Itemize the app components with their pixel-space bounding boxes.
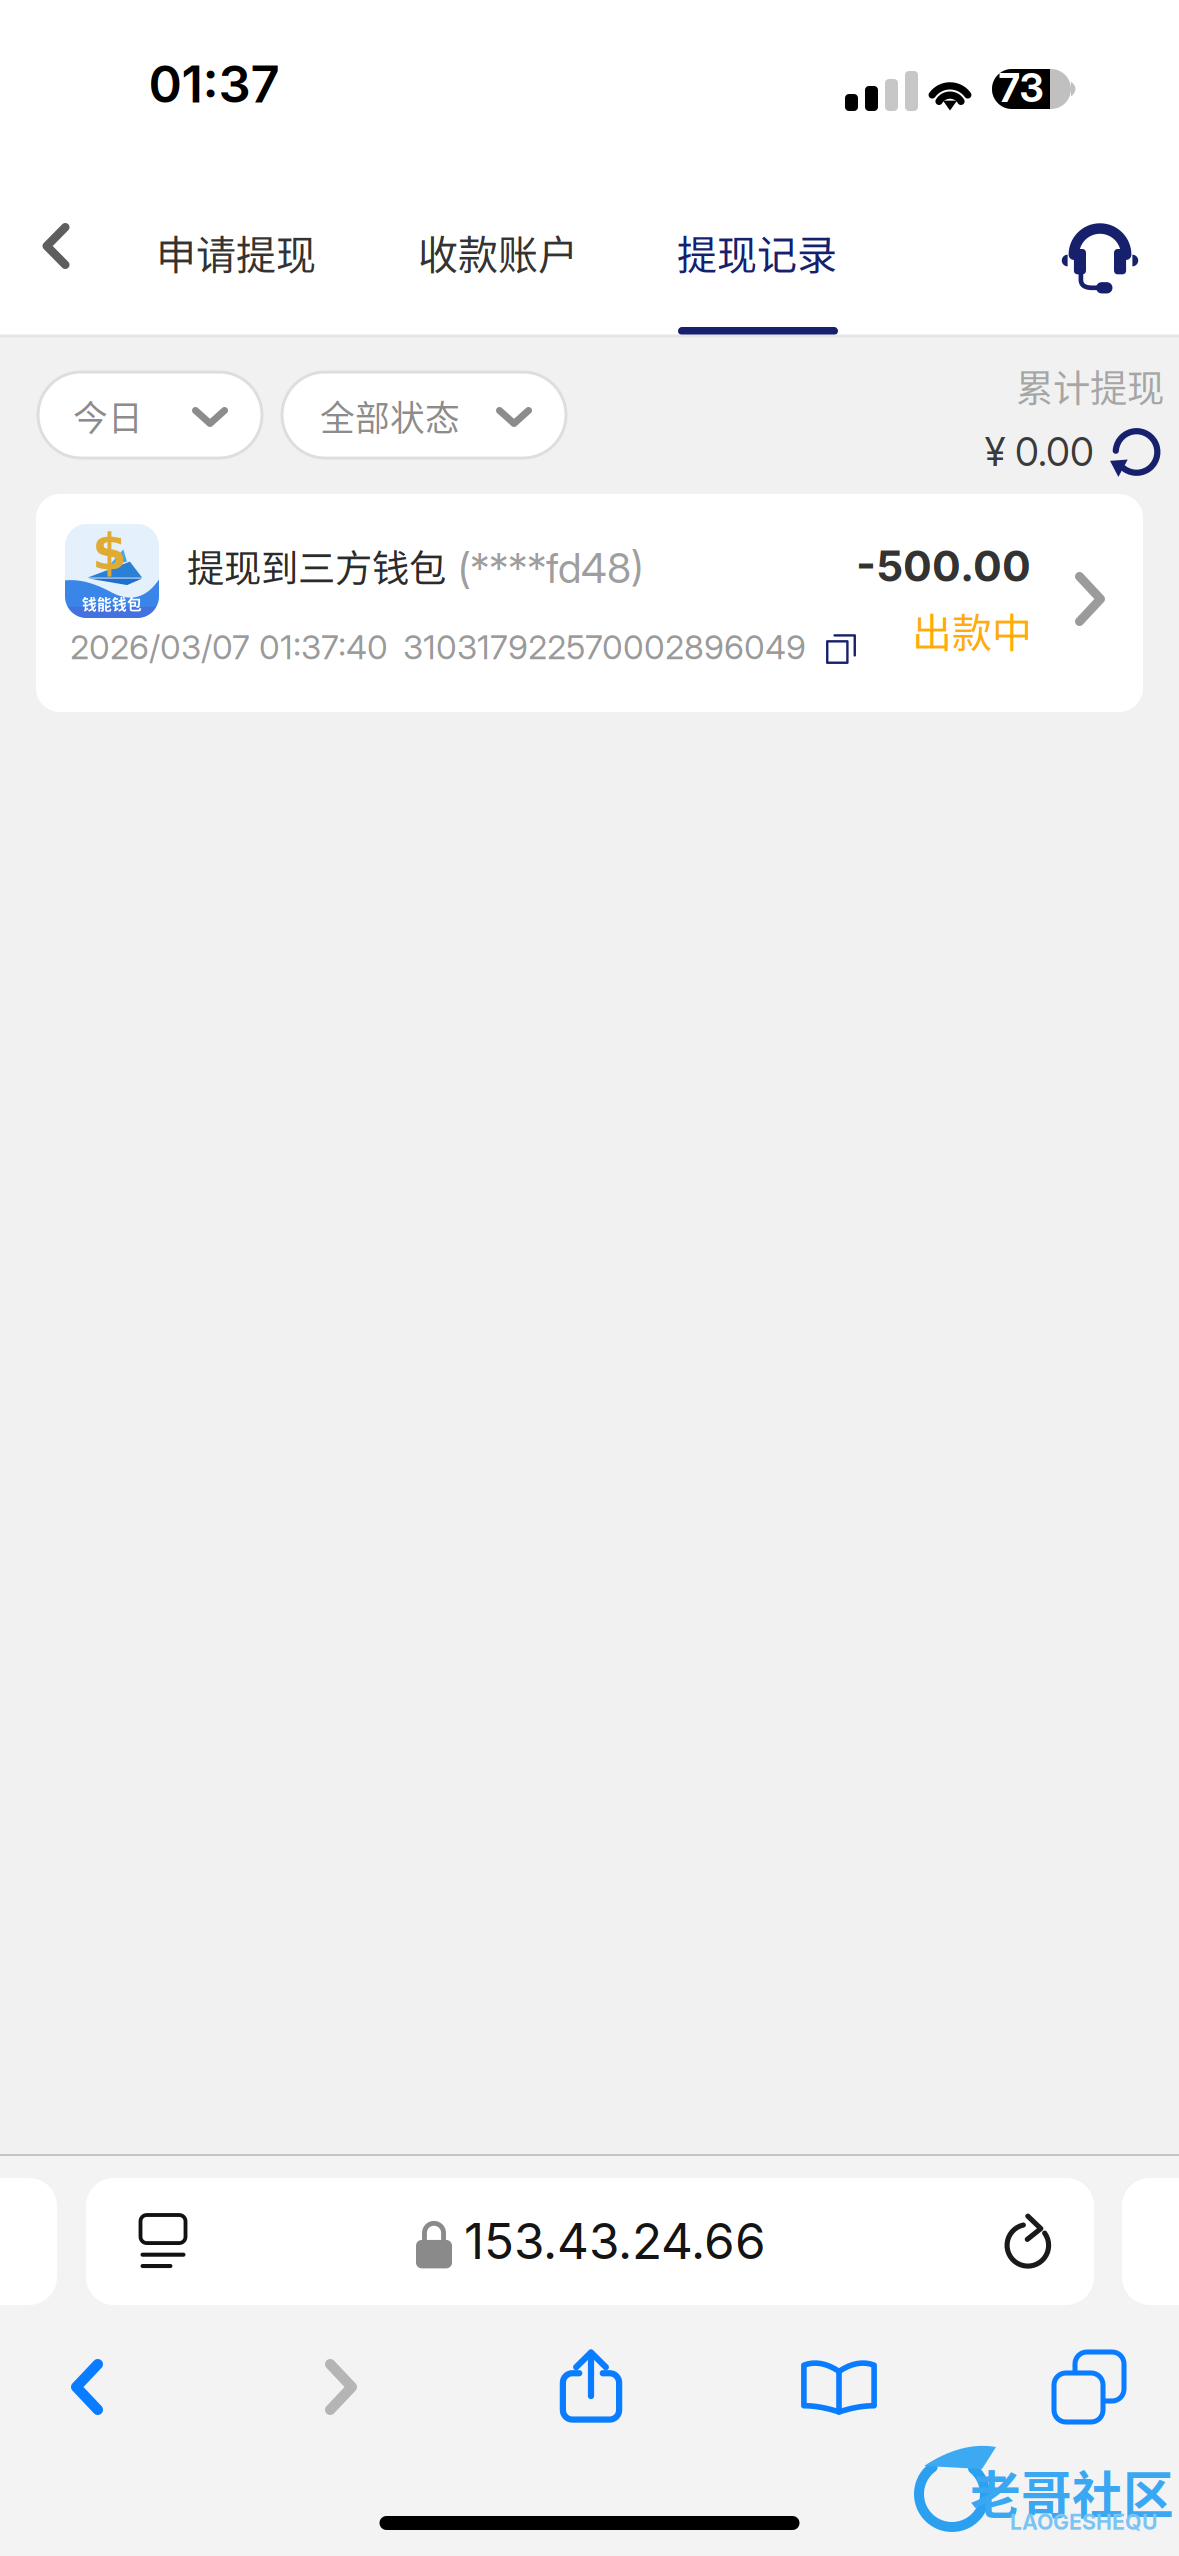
button[interactable]: Address [86,2178,1094,2305]
staticText: 310317922570002896049 [403,627,806,667]
button[interactable]: Back [0,170,120,335]
staticText: 73 [998,65,1043,111]
staticText: 全部状态 [320,391,460,441]
staticText: LAOGESHEQU [1010,2509,1158,2535]
staticText: ¥ 0.00 [985,429,1094,475]
button[interactable]: $ [36,494,1143,712]
staticText: 今日 [73,391,143,441]
staticText: $ [92,523,126,581]
staticText: 收款账户 [418,223,578,281]
button[interactable]: 全部状态 [282,372,566,458]
button[interactable]: Customer service [1025,170,1175,335]
button[interactable]: Tabs [1001,2323,1177,2451]
button[interactable]: Back [0,2323,175,2451]
button[interactable]: Refresh [1097,414,1173,490]
staticText: 钱能钱包 [82,593,142,614]
staticText: 申请提现 [156,223,316,281]
staticText: 老哥社区 [970,2455,1174,2529]
button[interactable]: 今日 [38,372,262,458]
button[interactable]: Forward [253,2323,429,2451]
staticText: 累计提现 [1016,359,1164,413]
staticText: 提现到三方钱包 [187,539,446,593]
button[interactable]: 提现记录 [650,170,865,335]
button[interactable]: 收款账户 [386,170,601,335]
staticText: (****fd48) [458,543,643,593]
staticText: 提现记录 [677,223,837,281]
button[interactable]: Bookmarks [751,2323,927,2451]
button[interactable]: Share [503,2321,679,2449]
staticText: -500.00 [856,540,1031,592]
staticText: 出款中 [912,601,1032,659]
staticText: 153.43.24.66 [464,2211,766,2271]
staticText: 01:37 [148,53,279,115]
staticText: 2026/03/07 01:37:40 [70,627,388,667]
button[interactable]: 申请提现 [128,170,343,335]
